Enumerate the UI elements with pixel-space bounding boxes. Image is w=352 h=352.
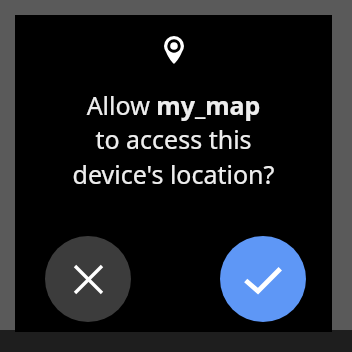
button[interactable]: Deny <box>45 236 131 322</box>
button[interactable]: Allow <box>220 236 306 322</box>
staticText: Allow my_map to access this device's loc… <box>15 88 332 192</box>
